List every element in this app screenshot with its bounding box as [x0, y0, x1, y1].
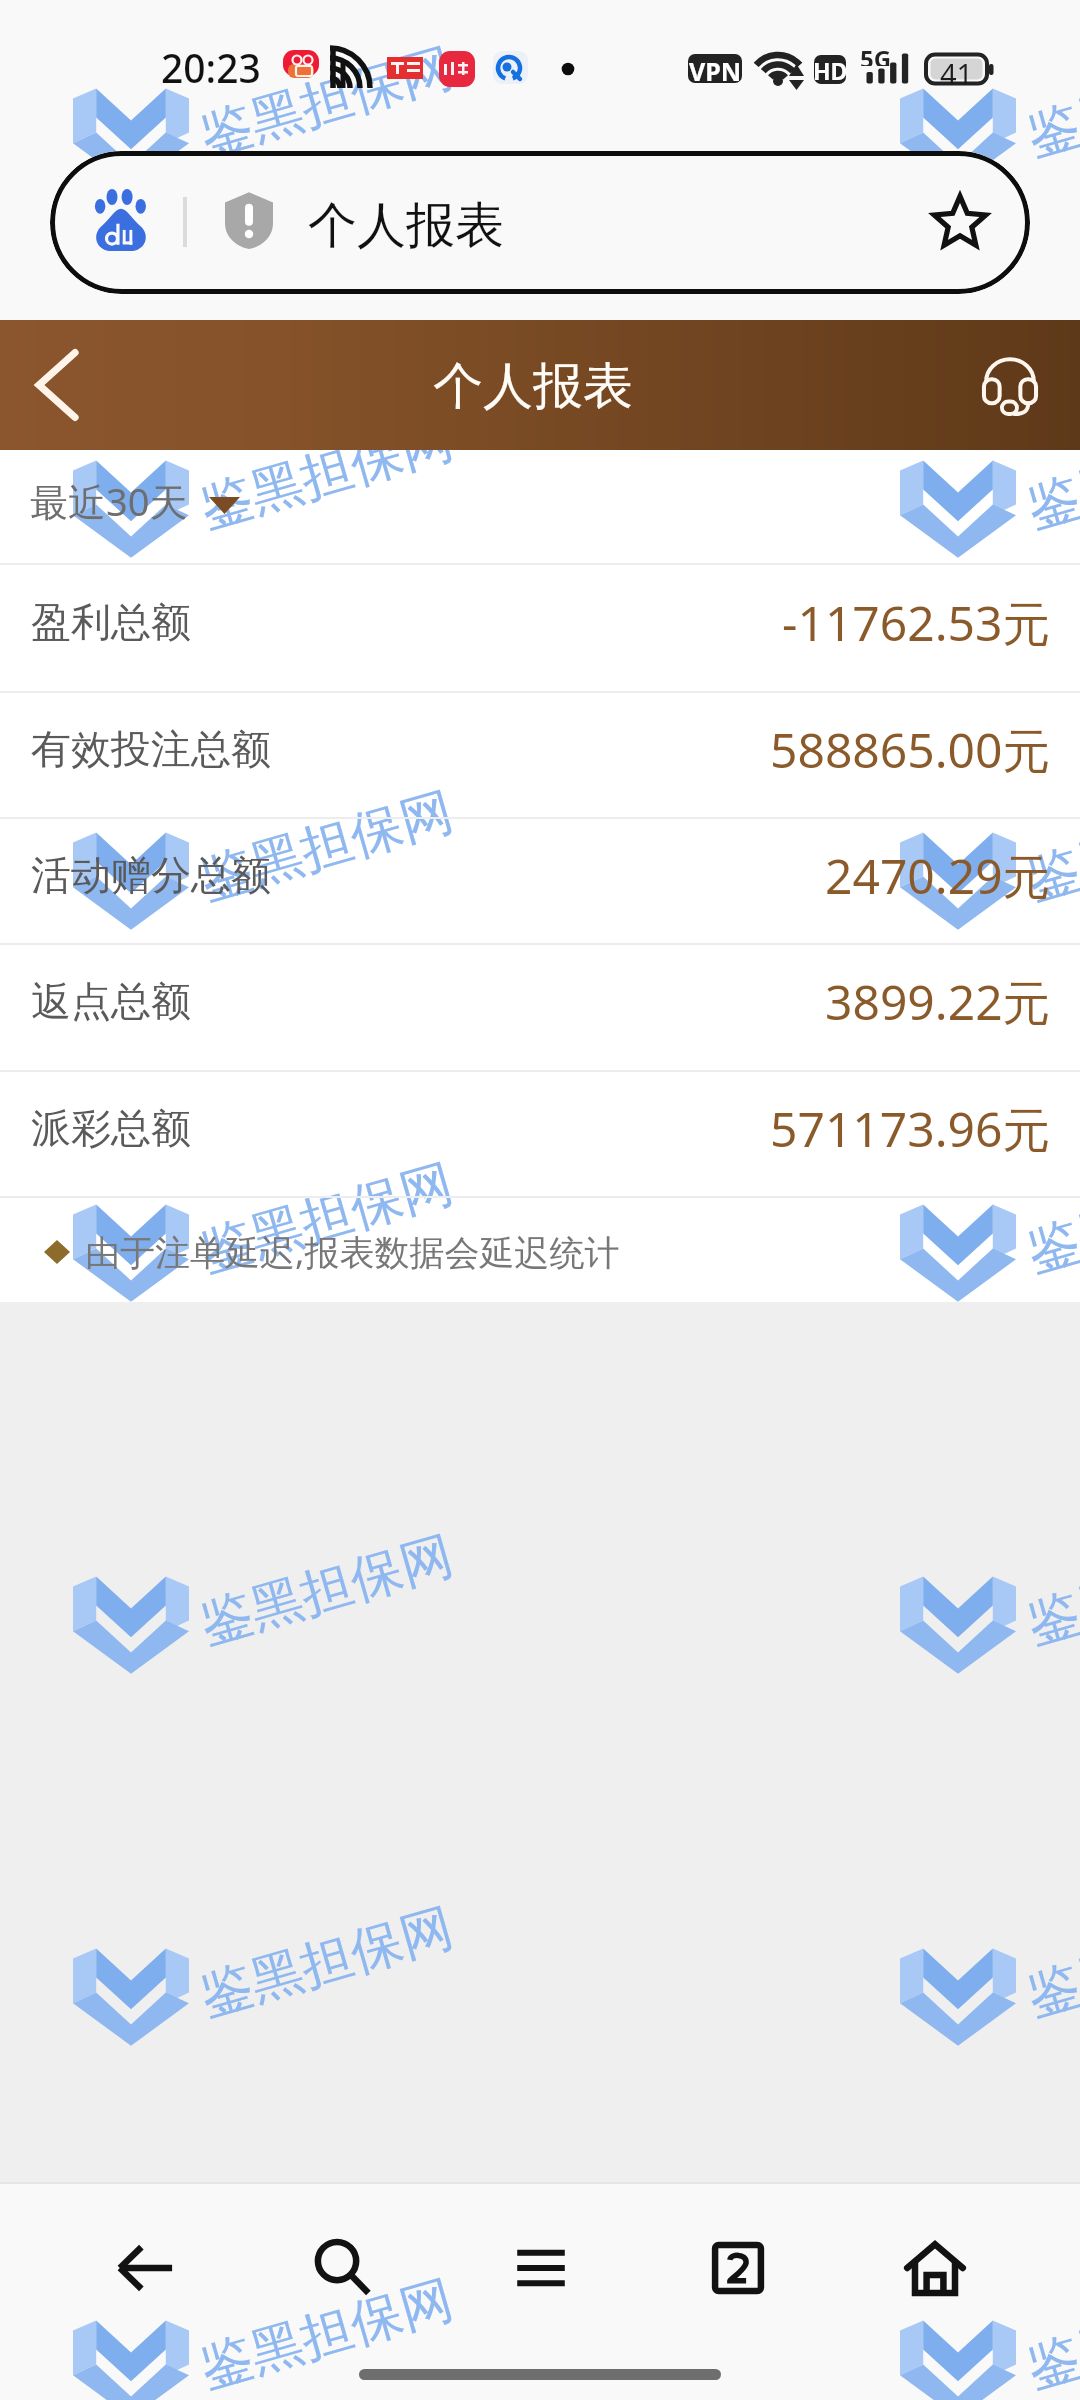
staticText: HD: [813, 55, 848, 84]
staticText: 2470.29元: [825, 843, 1051, 909]
button[interactable]: 活动赠分总额: [0, 819, 1080, 943]
staticText: 有效投注总额: [31, 724, 271, 774]
button[interactable]: Bookmark: [911, 172, 1009, 270]
staticText: 588865.00元: [770, 717, 1051, 783]
staticText: 3899.22元: [825, 969, 1051, 1035]
staticText: 20:23: [161, 41, 261, 94]
button[interactable]: 最近30天: [0, 450, 1080, 563]
button[interactable]: Customer service: [955, 320, 1065, 450]
staticText: 571173.96元: [770, 1096, 1051, 1162]
button[interactable]: 有效投注总额: [0, 693, 1080, 817]
staticText: 41: [940, 54, 974, 84]
staticText: 最近30天: [30, 475, 188, 527]
staticText: 派彩总额: [31, 1103, 191, 1153]
staticText: -11762.53元: [782, 590, 1051, 656]
staticText: 盈利总额: [31, 597, 191, 647]
button[interactable]: 返点总额: [0, 945, 1080, 1070]
staticText: 活动赠分总额: [31, 850, 271, 900]
button[interactable]: Search: [245, 2184, 442, 2352]
button[interactable]: 派彩总额: [0, 1072, 1080, 1196]
button[interactable]: Menu: [442, 2184, 639, 2352]
button[interactable]: Back: [47, 2184, 245, 2352]
staticText: 由于注单延迟,报表数据会延迟统计: [85, 1228, 620, 1276]
staticText: 个人报表: [308, 195, 504, 257]
button[interactable]: 个人报表: [50, 151, 1030, 294]
staticText: 个人报表: [433, 355, 633, 418]
staticText: VPN: [689, 54, 742, 83]
button[interactable]: Tabs: [639, 2184, 836, 2352]
button[interactable]: Home: [836, 2184, 1033, 2352]
staticText: 5G: [860, 42, 892, 66]
staticText: 返点总额: [31, 976, 191, 1026]
button[interactable]: 盈利总额: [0, 565, 1080, 691]
button[interactable]: Back: [5, 320, 109, 450]
